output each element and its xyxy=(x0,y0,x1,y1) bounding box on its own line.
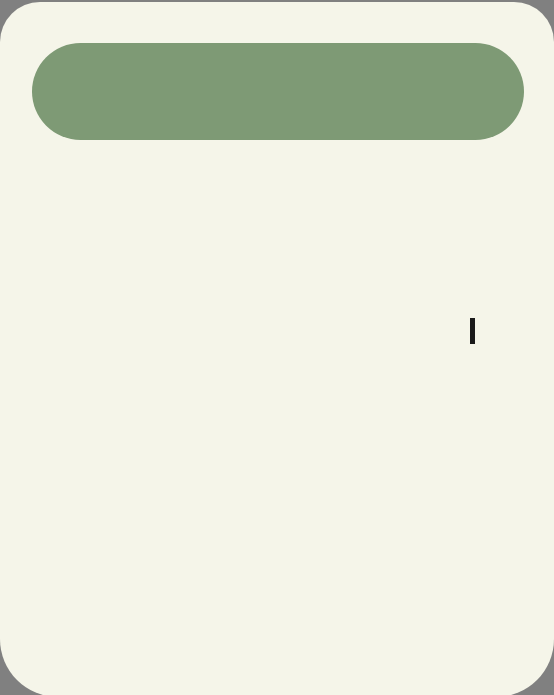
button[interactable]: Primary action xyxy=(32,43,524,140)
